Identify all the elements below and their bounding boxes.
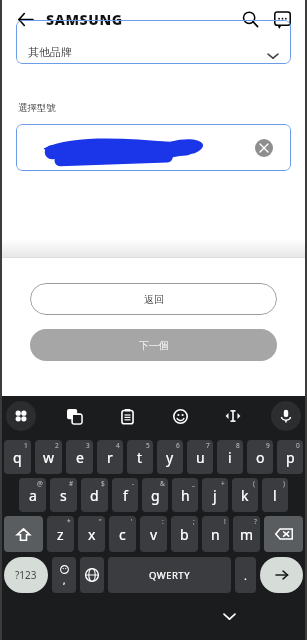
button[interactable]: Clear xyxy=(255,139,273,157)
staticText: o xyxy=(256,448,265,467)
staticText: 4 xyxy=(116,441,120,450)
staticText: ( xyxy=(253,479,255,488)
staticText: & xyxy=(160,479,165,488)
staticText: ' xyxy=(131,517,133,526)
staticText: x xyxy=(88,525,96,544)
staticText: _ xyxy=(192,479,195,488)
button[interactable]: s xyxy=(50,478,77,512)
button[interactable]: y xyxy=(157,440,183,474)
staticText: b xyxy=(180,525,189,544)
staticText: y xyxy=(166,448,174,467)
staticText: f xyxy=(123,486,128,505)
button[interactable]: Clear xyxy=(16,124,291,171)
button[interactable]: Hide keyboard xyxy=(212,599,246,633)
button[interactable]: o xyxy=(247,440,273,474)
staticText: * xyxy=(67,517,71,526)
staticText: " xyxy=(99,517,102,526)
staticText: ; xyxy=(193,517,195,526)
button[interactable]: a xyxy=(19,478,46,512)
button[interactable]: 下一個 xyxy=(30,329,277,361)
button[interactable]: Translate xyxy=(59,401,89,431)
button[interactable]: f xyxy=(112,478,138,512)
button[interactable]: w xyxy=(35,440,62,474)
staticText: u xyxy=(196,448,205,467)
staticText: 9 xyxy=(266,441,270,450)
button[interactable]: g xyxy=(142,478,168,512)
button[interactable]: l xyxy=(262,478,288,512)
staticText: c xyxy=(119,525,126,544)
staticText: 3 xyxy=(86,441,90,450)
staticText: g xyxy=(151,486,160,505)
staticText: 8 xyxy=(236,441,240,450)
staticText: e xyxy=(76,448,84,467)
staticText: . xyxy=(244,568,247,583)
staticText: , xyxy=(63,574,66,586)
button[interactable]: t xyxy=(127,440,153,474)
staticText: i xyxy=(228,448,232,467)
button[interactable]: j xyxy=(202,478,228,512)
button[interactable]: Voice input xyxy=(271,401,301,431)
staticText: + xyxy=(221,479,225,488)
staticText: 2 xyxy=(55,441,59,450)
button[interactable]: x xyxy=(78,516,105,552)
staticText: l xyxy=(273,486,277,505)
button[interactable]: Emoji and comma xyxy=(52,557,76,593)
button[interactable]: Clipboard xyxy=(112,401,142,431)
button[interactable]: Back xyxy=(10,4,40,34)
button[interactable]: z xyxy=(47,516,74,552)
button[interactable]: ?123 xyxy=(4,557,48,593)
staticText: j xyxy=(213,486,217,505)
button[interactable]: Chat xyxy=(267,4,297,34)
button[interactable]: i xyxy=(217,440,243,474)
button[interactable]: . xyxy=(235,557,256,593)
button[interactable]: u xyxy=(187,440,213,474)
staticText: 下一個 xyxy=(139,339,169,352)
staticText: q xyxy=(13,448,22,467)
staticText: m xyxy=(240,525,254,544)
button[interactable]: r xyxy=(97,440,123,474)
button[interactable]: Emoji xyxy=(165,401,195,431)
staticText: k xyxy=(241,486,249,505)
staticText: n xyxy=(211,525,220,544)
staticText: $ xyxy=(101,479,105,488)
button[interactable]: b xyxy=(171,516,198,552)
staticText: - xyxy=(132,479,135,488)
staticText: @ xyxy=(37,479,43,488)
staticText: 5 xyxy=(146,441,150,450)
staticText: ) xyxy=(283,479,285,488)
staticText: a xyxy=(29,486,37,505)
button[interactable]: Backspace xyxy=(264,516,303,552)
button[interactable]: 其他品牌 xyxy=(16,20,291,64)
staticText: t xyxy=(137,448,143,467)
staticText: r xyxy=(107,448,113,467)
staticText: ? xyxy=(254,517,257,526)
button[interactable]: Change language xyxy=(80,557,104,593)
staticText: 6 xyxy=(176,441,180,450)
button[interactable]: Move cursor xyxy=(218,401,248,431)
button[interactable]: q xyxy=(4,440,31,474)
button[interactable]: h xyxy=(172,478,198,512)
button[interactable]: n xyxy=(202,516,229,552)
button[interactable]: 返回 xyxy=(30,283,277,315)
button[interactable]: QWERTY xyxy=(108,557,231,593)
button[interactable]: p xyxy=(277,440,303,474)
staticText: ?123 xyxy=(15,568,37,582)
staticText: 7 xyxy=(206,441,210,450)
button[interactable]: d xyxy=(81,478,108,512)
staticText: 0 xyxy=(296,441,300,450)
button[interactable]: c xyxy=(109,516,136,552)
staticText: ! xyxy=(224,517,226,526)
staticText: w xyxy=(43,448,55,467)
button[interactable]: k xyxy=(232,478,258,512)
button[interactable]: Search xyxy=(235,4,265,34)
staticText: v xyxy=(150,525,158,544)
button[interactable]: Shift xyxy=(4,516,43,552)
button[interactable]: v xyxy=(140,516,167,552)
staticText: 返回 xyxy=(144,293,164,306)
button[interactable]: Enter xyxy=(260,557,303,593)
button[interactable]: m xyxy=(233,516,260,552)
button[interactable]: Apps xyxy=(6,401,36,431)
staticText: 其他品牌 xyxy=(28,45,72,59)
button[interactable]: e xyxy=(66,440,93,474)
staticText: p xyxy=(286,448,295,467)
